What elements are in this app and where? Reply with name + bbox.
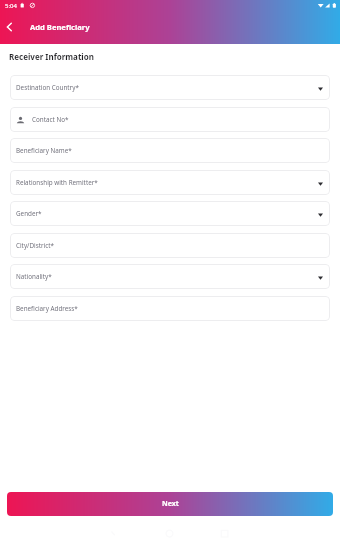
- staticText: Receiver Information: [9, 51, 94, 62]
- button[interactable]: Next: [7, 492, 333, 516]
- button[interactable]: Relationship with Remitter*: [10, 170, 330, 195]
- button[interactable]: Back: [0, 15, 19, 39]
- staticText: Beneficiary Address*: [16, 304, 78, 313]
- staticText: City/District*: [16, 241, 54, 250]
- staticText: Beneficiary Name*: [16, 146, 72, 155]
- button[interactable]: Gender*: [10, 201, 330, 226]
- staticText: 5:04: [5, 2, 17, 10]
- staticText: Contact No*: [32, 115, 69, 124]
- button[interactable]: City/District*: [10, 233, 330, 258]
- staticText: Gender*: [16, 209, 42, 218]
- staticText: Next: [162, 499, 179, 509]
- staticText: Destination Country*: [16, 83, 79, 92]
- staticText: Nationality*: [16, 272, 52, 281]
- button[interactable]: Destination Country*: [10, 75, 330, 100]
- staticText: Relationship with Remitter*: [16, 178, 98, 187]
- button[interactable]: Beneficiary Address*: [10, 296, 330, 321]
- staticText: Add Beneficiary: [30, 22, 90, 32]
- button[interactable]: Nationality*: [10, 264, 330, 289]
- button[interactable]: Beneficiary Name*: [10, 138, 330, 163]
- button[interactable]: Contact No*: [10, 107, 330, 132]
